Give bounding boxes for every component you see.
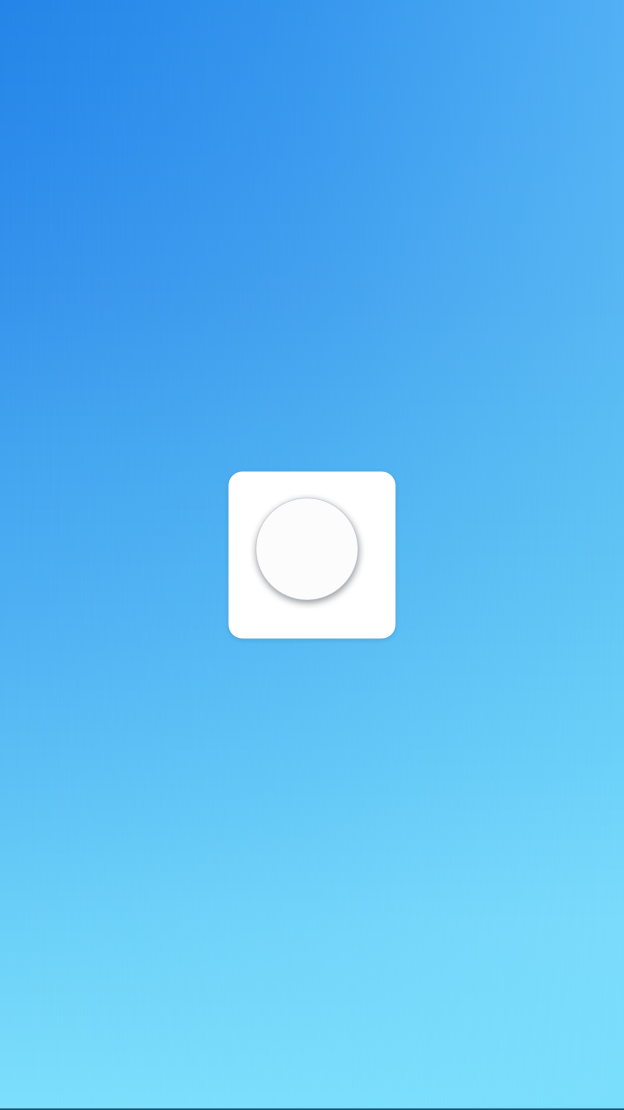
button[interactable]: Open app [228,471,395,638]
